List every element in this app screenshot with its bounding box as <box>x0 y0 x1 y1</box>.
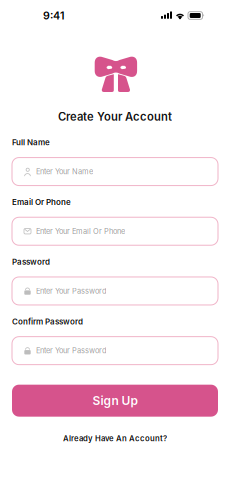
button[interactable]: Enter Your Password <box>12 337 218 365</box>
staticText: Password <box>12 257 50 267</box>
button[interactable]: Enter Your Name <box>12 158 218 186</box>
staticText: Confirm Password <box>12 317 83 326</box>
staticText: Create Your Account <box>58 110 172 124</box>
staticText: Full Name <box>12 138 50 147</box>
staticText: 9:41 <box>43 9 65 22</box>
staticText: Sign Up <box>92 393 137 408</box>
staticText: Email Or Phone <box>12 197 71 207</box>
staticText: Enter Your Email Or Phone <box>36 227 125 236</box>
staticText: Already Have An Account? <box>63 434 167 443</box>
button[interactable]: Enter Your Password <box>12 277 218 305</box>
button[interactable]: Already Have An Account? <box>53 428 177 449</box>
button[interactable]: Sign Up <box>12 385 218 417</box>
staticText: Enter Your Name <box>36 167 93 176</box>
staticText: Enter Your Password <box>36 286 107 295</box>
staticText: Enter Your Password <box>36 346 107 355</box>
button[interactable]: Enter Your Email Or Phone <box>12 217 218 245</box>
